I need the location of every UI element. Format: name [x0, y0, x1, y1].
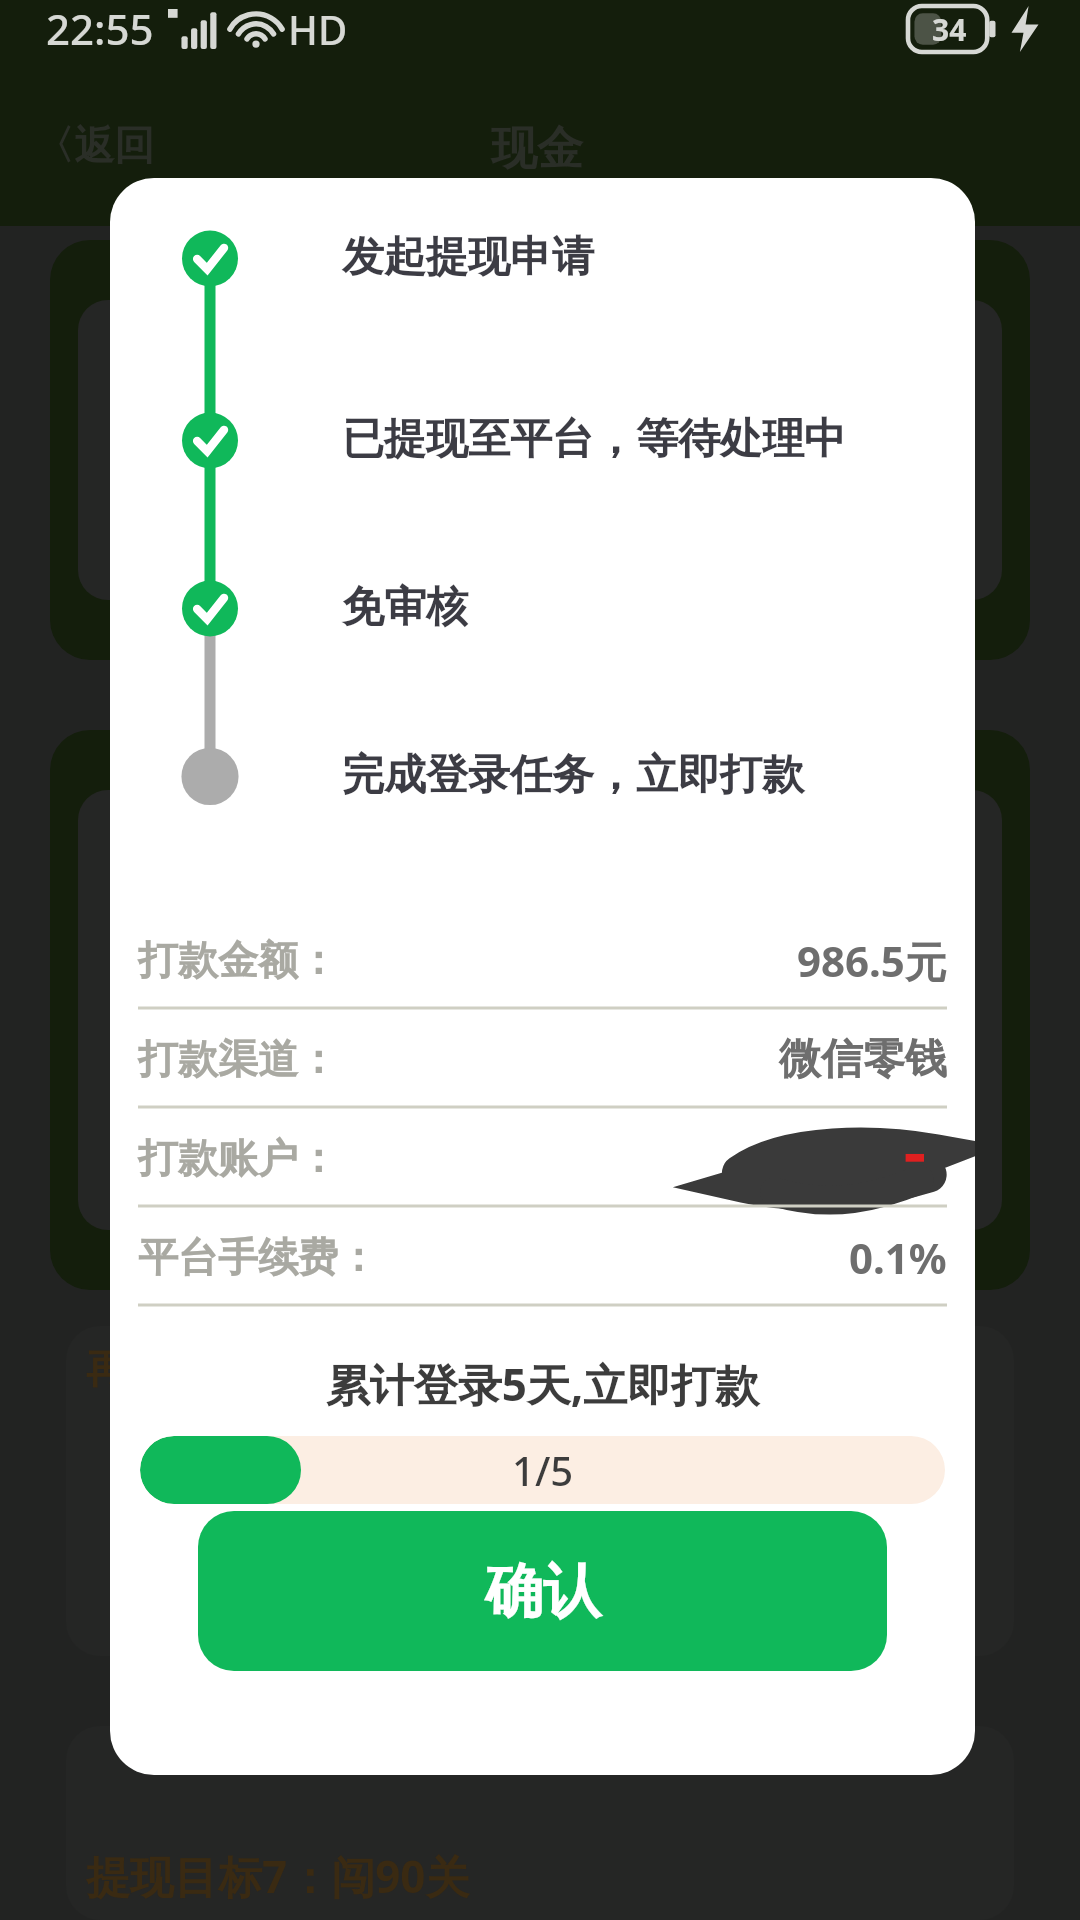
- staticText: 累计登录5天,立即打款: [110, 1354, 975, 1414]
- button[interactable]: 确认: [198, 1511, 887, 1671]
- staticText: 打款渠道：: [138, 1034, 338, 1084]
- button[interactable]: 已提现至平台，等待处理中: [342, 413, 959, 466]
- staticText: 再登录4天可打款: [86, 1340, 389, 1395]
- staticText: 0.1%: [849, 1229, 947, 1286]
- button[interactable]: 再登录4天可打款: [66, 1326, 1014, 1656]
- staticText: 微信零钱: [779, 1033, 947, 1086]
- staticText: 打款进度〉: [814, 1340, 994, 1385]
- button[interactable]: 免审核: [342, 581, 959, 634]
- staticText: 986.5元: [797, 932, 947, 989]
- staticText: 22:55: [46, 0, 154, 57]
- button[interactable]: 发起提现申请: [342, 231, 959, 284]
- button[interactable]: 完成登录任务，立即打款: [342, 749, 959, 802]
- button[interactable]: [50, 240, 1030, 660]
- staticText: 现金: [491, 120, 583, 178]
- button[interactable]: [50, 730, 1030, 1290]
- button[interactable]: 打款渠道：: [138, 1011, 947, 1107]
- staticText: 34: [932, 9, 967, 50]
- button[interactable]: 1/5: [140, 1436, 945, 1504]
- staticText: 提现目标7：闯90关: [86, 1846, 470, 1906]
- staticText: 平台手续费：: [138, 1232, 378, 1282]
- staticText: 打款金额：: [138, 935, 338, 985]
- button[interactable]: 提现目标7：闯90关: [66, 1726, 1014, 1920]
- staticText: 发起提现申请: [342, 231, 594, 284]
- button[interactable]: 打款金额：: [138, 912, 947, 1008]
- button[interactable]: 打款账户：: [138, 1110, 947, 1206]
- button[interactable]: 返回: [34, 120, 154, 170]
- staticText: HD: [288, 2, 348, 56]
- staticText: 完成登录任务，立即打款: [342, 749, 804, 802]
- staticText: 1/5: [512, 1443, 574, 1497]
- staticText: 〈返回: [34, 120, 154, 170]
- staticText: 确认: [485, 1555, 601, 1628]
- button[interactable]: 平台手续费：: [138, 1209, 947, 1305]
- staticText: 已提现至平台，等待处理中: [342, 413, 846, 466]
- staticText: 免审核: [342, 581, 468, 634]
- staticText: 打款账户：: [138, 1133, 338, 1183]
